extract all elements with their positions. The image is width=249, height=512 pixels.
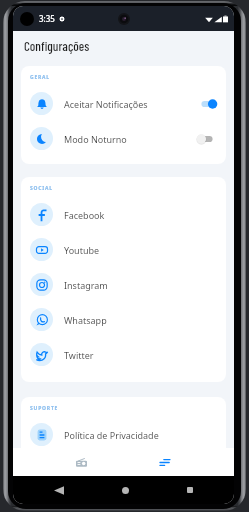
button[interactable]: Youtube bbox=[21, 232, 226, 267]
button[interactable]: Rádio bbox=[13, 448, 123, 476]
button[interactable]: Desligado bbox=[197, 134, 217, 144]
staticText: 3:35 bbox=[39, 13, 55, 24]
staticText: GERAL bbox=[30, 74, 50, 81]
button[interactable]: Voltar bbox=[54, 486, 64, 495]
button[interactable]: Recentes bbox=[187, 487, 193, 493]
button[interactable]: Aceitar Notificações bbox=[21, 86, 226, 121]
button[interactable]: Modo Noturno bbox=[21, 121, 226, 156]
staticText: Twitter bbox=[64, 349, 94, 361]
button[interactable]: Ajustes bbox=[123, 448, 234, 476]
staticText: Youtube bbox=[64, 244, 100, 256]
staticText: Facebook bbox=[64, 209, 105, 221]
staticText: Configurações bbox=[24, 38, 90, 54]
staticText: Instagram bbox=[64, 279, 108, 291]
button[interactable]: Início bbox=[122, 487, 129, 494]
staticText: Política de Privacidade bbox=[64, 429, 159, 441]
button[interactable]: Whatsapp bbox=[21, 302, 226, 337]
button[interactable]: Twitter bbox=[21, 337, 226, 372]
staticText: Aceitar Notificações bbox=[64, 98, 148, 110]
button[interactable]: Ligado bbox=[197, 99, 217, 109]
button[interactable]: Política de Privacidade bbox=[21, 417, 226, 452]
staticText: Whatsapp bbox=[64, 314, 107, 326]
staticText: SUPORTE bbox=[30, 405, 59, 412]
button[interactable]: Instagram bbox=[21, 267, 226, 302]
staticText: Modo Noturno bbox=[64, 133, 127, 145]
button[interactable]: Facebook bbox=[21, 197, 226, 232]
staticText: SOCIAL bbox=[30, 185, 53, 192]
